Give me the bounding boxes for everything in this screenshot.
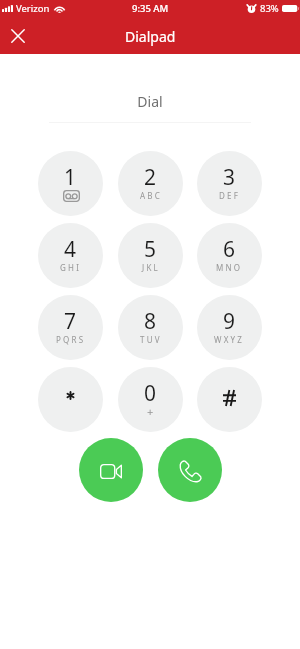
staticText: 7 [64,307,77,336]
staticText: 6 [223,235,236,264]
button[interactable]: 9 [197,295,262,360]
button[interactable] [197,367,262,432]
staticText: ABC [140,190,162,201]
staticText: WXYZ [214,334,245,345]
staticText: GHI [60,262,82,273]
staticText: 9:35 AM [132,2,169,15]
button[interactable]: 5 [118,223,183,288]
button[interactable]: Close [3,21,33,51]
staticText: JKL [142,262,160,273]
button[interactable]: 7 [38,295,103,360]
staticText: 1 [64,163,77,192]
staticText: 4 [64,235,77,264]
button[interactable]: 3 [197,151,262,216]
staticText: 3 [223,163,236,192]
staticText: 8 [144,307,157,336]
staticText: Dial [49,92,251,111]
button[interactable]: 4 [38,223,103,288]
staticText: 2 [144,163,157,192]
button[interactable]: 8 [118,295,183,360]
staticText: 5 [144,235,157,264]
staticText: PQRS [56,334,86,345]
staticText: MNO [216,262,243,273]
staticText: Dialpad [125,27,176,46]
staticText: DEF [219,190,241,201]
button[interactable] [38,367,103,432]
button[interactable]: 6 [197,223,262,288]
staticText: + [147,404,154,419]
button[interactable]: Call [158,438,222,502]
staticText: 83% [260,2,279,15]
staticText: 9 [223,307,236,336]
button[interactable]: 2 [118,151,183,216]
button[interactable]: 0 [118,367,183,432]
staticText: TUV [140,334,162,345]
button[interactable]: 1 [38,151,103,216]
staticText: Verizon [16,2,50,15]
button[interactable]: Video call [79,438,143,502]
staticText: 0 [144,379,157,408]
